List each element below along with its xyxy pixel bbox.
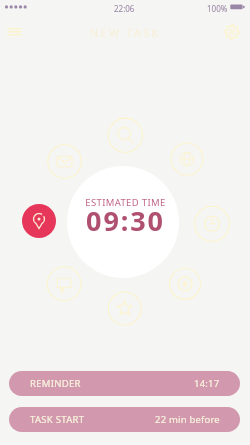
button[interactable]: Settings (221, 21, 243, 43)
button[interactable]: REMINDER (9, 371, 240, 396)
button[interactable]: Location (22, 204, 56, 238)
staticText: NEW TASK (90, 25, 161, 40)
staticText: 22 min before (155, 413, 220, 426)
staticText: 14:17 (194, 377, 220, 390)
button[interactable]: TASK START (9, 407, 240, 432)
staticText: REMINDER (30, 377, 81, 390)
button[interactable]: Menu (1, 19, 27, 45)
staticText: ESTIMATED TIME (85, 196, 166, 209)
staticText: TASK START (30, 413, 85, 426)
staticText: 09:30 (86, 202, 165, 239)
staticText: 22:06 (114, 3, 135, 14)
staticText: 100% (207, 3, 228, 14)
